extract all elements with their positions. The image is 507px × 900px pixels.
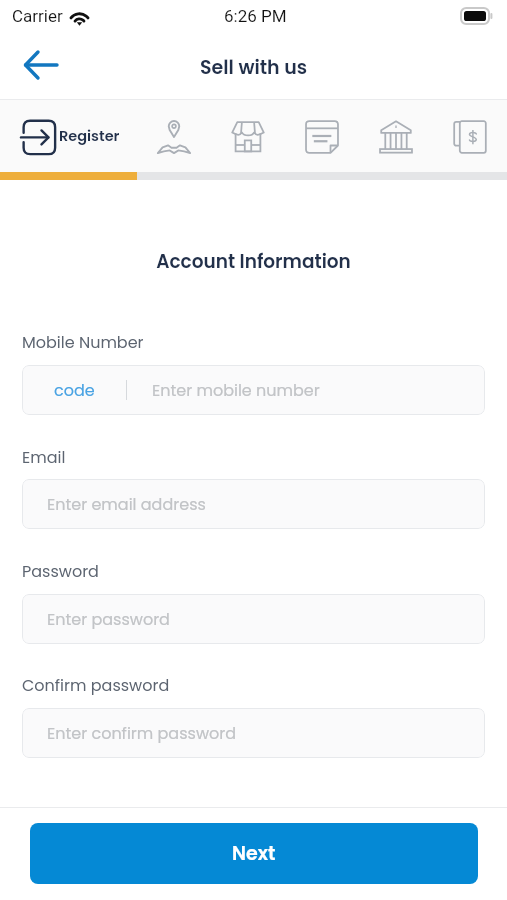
staticText: Register	[59, 126, 120, 146]
button[interactable]: code	[22, 365, 126, 415]
staticText: Password	[22, 560, 99, 582]
staticText: Account Information	[0, 249, 507, 275]
button[interactable]: Back	[16, 40, 66, 90]
staticText: Sell with us	[200, 54, 308, 81]
button[interactable]: Enter confirm password	[22, 708, 485, 758]
button[interactable]: Enter password	[22, 594, 485, 644]
staticText: Enter email address	[47, 493, 206, 515]
button[interactable]: Next	[30, 823, 478, 884]
staticText: Email	[22, 446, 66, 468]
staticText: Mobile Number	[22, 331, 144, 353]
staticText: Enter password	[47, 608, 170, 630]
staticText: Next	[232, 840, 276, 867]
button[interactable]: Register	[0, 100, 137, 172]
button[interactable]: Store details	[211, 100, 285, 172]
button[interactable]: Enter email address	[22, 479, 485, 529]
staticText: 6:26 PM	[224, 6, 287, 26]
staticText: Confirm password	[22, 674, 170, 696]
button[interactable]: Enter mobile number	[127, 365, 485, 415]
staticText: Enter confirm password	[47, 722, 237, 744]
staticText: code	[54, 379, 95, 401]
button[interactable]: Bank details	[359, 100, 433, 172]
staticText: Enter mobile number	[152, 379, 320, 401]
staticText: Carrier	[12, 6, 63, 26]
button[interactable]: Business location	[137, 100, 211, 172]
button[interactable]: Payment	[433, 100, 507, 172]
button[interactable]: Documents	[285, 100, 359, 172]
